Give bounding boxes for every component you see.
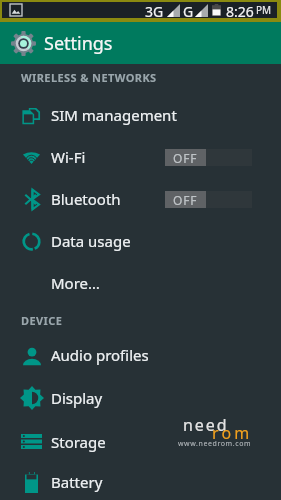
staticText: need <box>183 414 229 436</box>
button[interactable]: Wi-Fi <box>0 136 281 178</box>
staticText: www.needrom.com <box>178 439 252 449</box>
staticText: More… <box>51 273 100 293</box>
staticText: 3G <box>145 2 164 18</box>
staticText: Wi-Fi <box>51 147 86 167</box>
button[interactable]: Settings <box>0 22 281 64</box>
button[interactable]: Bluetooth <box>0 178 281 220</box>
staticText: PM <box>256 3 272 17</box>
staticText: Storage <box>51 432 106 452</box>
staticText: Battery <box>51 472 103 492</box>
staticText: OFF <box>173 150 198 166</box>
button[interactable]: More… <box>0 262 281 304</box>
button[interactable]: Audio profiles <box>0 334 281 376</box>
staticText: Settings <box>44 31 113 56</box>
button[interactable]: Data usage <box>0 220 281 262</box>
staticText: G <box>183 2 194 18</box>
staticText: Bluetooth <box>51 189 121 209</box>
button[interactable]: OFF <box>165 149 252 166</box>
staticText: WIRELESS & NETWORKS <box>21 70 157 85</box>
button[interactable]: OFF <box>165 191 252 208</box>
staticText: Audio profiles <box>51 345 149 365</box>
staticText: rom <box>212 422 253 444</box>
staticText: 8:26 <box>226 2 254 18</box>
staticText: OFF <box>173 192 198 208</box>
staticText: SIM management <box>51 105 177 125</box>
button[interactable]: Storage <box>0 419 281 464</box>
staticText: Data usage <box>51 231 131 251</box>
staticText: Display <box>51 388 103 408</box>
button[interactable]: Battery <box>0 464 281 500</box>
button[interactable]: SIM management <box>0 94 281 136</box>
staticText: DEVICE <box>21 313 63 328</box>
button[interactable]: Display <box>0 376 281 419</box>
